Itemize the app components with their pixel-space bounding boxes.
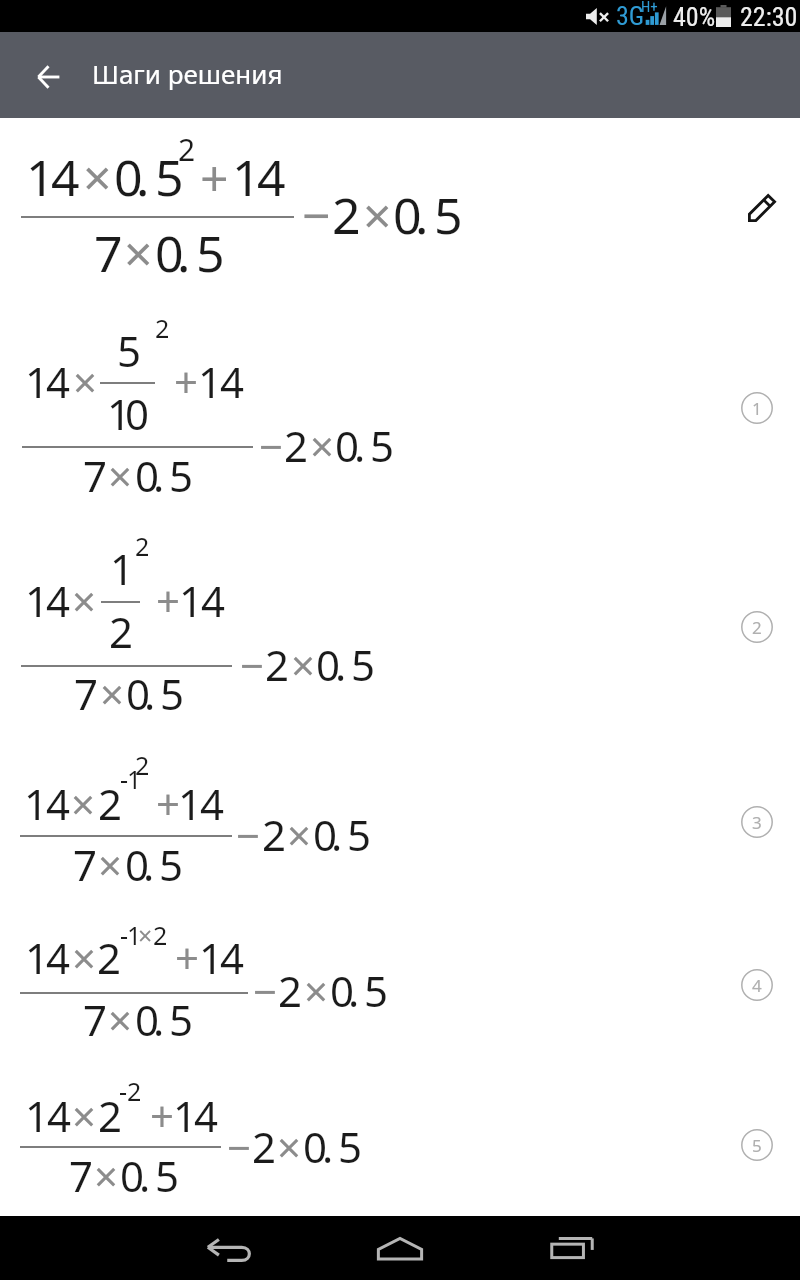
staticText: .	[354, 417, 366, 474]
staticText: ×	[108, 447, 133, 504]
staticText: 0	[313, 806, 338, 863]
staticText: H+	[641, 0, 658, 16]
button[interactable]: Navigate up	[0, 32, 96, 118]
staticText: 1	[178, 775, 203, 832]
staticText: 1	[110, 540, 135, 597]
button[interactable]: Home	[377, 1226, 423, 1272]
staticText: 5	[434, 181, 463, 249]
staticText: 7	[94, 219, 123, 287]
button[interactable]: Recent apps	[549, 1225, 595, 1271]
staticText: 4	[194, 1087, 219, 1144]
staticText: ×	[73, 353, 98, 410]
staticText: 5	[351, 636, 376, 693]
staticText: 2	[127, 1074, 142, 1108]
staticText: 1	[25, 929, 50, 986]
staticText: ×	[72, 929, 97, 986]
staticText: 7	[74, 665, 99, 722]
staticText: −	[240, 636, 265, 693]
staticText: 4	[220, 929, 245, 986]
staticText: 5	[155, 1147, 180, 1204]
staticText: +	[156, 775, 181, 832]
staticText: 5	[169, 991, 194, 1048]
staticText: 5	[155, 143, 184, 211]
staticText: 1	[199, 929, 224, 986]
staticText: 5	[347, 806, 372, 863]
staticText: 2	[98, 775, 123, 832]
staticText: 0	[393, 181, 422, 249]
button[interactable]: Back	[196, 1227, 262, 1273]
staticText: 0	[120, 1147, 145, 1204]
staticText: 1	[179, 572, 204, 629]
staticText: 1	[232, 143, 261, 211]
staticText: 5	[160, 665, 185, 722]
staticText: 1	[107, 385, 132, 442]
staticText: -	[120, 918, 129, 952]
staticText: ×	[138, 918, 153, 952]
staticText: 0	[114, 143, 143, 211]
staticText: 5	[364, 962, 389, 1019]
staticText: 2	[98, 1087, 123, 1144]
staticText: 0	[125, 836, 150, 893]
staticText: .	[153, 991, 165, 1048]
staticText: 4	[46, 775, 71, 832]
staticText: 2	[278, 962, 303, 1019]
staticText: 40%	[673, 2, 716, 32]
staticText: ×	[72, 1087, 97, 1144]
staticText: 1	[26, 143, 55, 211]
staticText: 1	[25, 353, 50, 410]
button[interactable]: Step 2	[733, 603, 781, 651]
staticText: ×	[94, 1147, 119, 1204]
staticText: 5	[370, 417, 395, 474]
staticText: 4	[46, 929, 71, 986]
button[interactable]: Step 5	[733, 1121, 781, 1169]
staticText: 2	[97, 929, 122, 986]
staticText: 2	[135, 748, 150, 782]
staticText: ×	[304, 962, 329, 1019]
staticText: 7	[69, 1147, 94, 1204]
staticText: ×	[124, 219, 153, 287]
staticText: 2	[752, 616, 762, 639]
staticText: 2	[262, 806, 287, 863]
staticText: 7	[73, 836, 98, 893]
button[interactable]: Step 1	[733, 384, 781, 432]
staticText: −	[253, 962, 278, 1019]
staticText: .	[153, 447, 165, 504]
staticText: +	[174, 353, 199, 410]
staticText: +	[150, 1087, 175, 1144]
staticText: 0	[125, 385, 150, 442]
staticText: 4	[201, 572, 226, 629]
staticText: 5	[117, 322, 142, 379]
staticText: .	[348, 962, 360, 1019]
staticText: 0	[135, 447, 160, 504]
staticText: 4	[51, 143, 80, 211]
staticText: 1	[25, 572, 50, 629]
staticText: -	[119, 1074, 128, 1108]
staticText: 5	[338, 1118, 363, 1175]
button[interactable]: Step 4	[733, 961, 781, 1009]
staticText: 1	[127, 918, 142, 952]
staticText: 2	[153, 918, 168, 952]
button[interactable]: Edit expression	[738, 184, 786, 232]
staticText: +	[175, 929, 200, 986]
staticText: 22:30	[740, 2, 798, 32]
staticText: 0	[335, 417, 360, 474]
button[interactable]: Step 3	[733, 798, 781, 846]
staticText: .	[144, 665, 156, 722]
staticText: .	[177, 219, 191, 287]
staticText: 0	[135, 991, 160, 1048]
staticText: 1	[752, 397, 762, 420]
staticText: ×	[287, 806, 312, 863]
staticText: ×	[277, 1118, 302, 1175]
staticText: ×	[83, 143, 112, 211]
staticText: 4	[46, 353, 71, 410]
staticText: 4	[257, 143, 286, 211]
staticText: 5	[752, 1134, 762, 1157]
staticText: 1	[24, 775, 49, 832]
staticText: ×	[363, 181, 392, 249]
staticText: 1	[25, 1087, 50, 1144]
staticText: ×	[98, 836, 123, 893]
staticText: +	[200, 143, 229, 211]
staticText: 2	[284, 417, 309, 474]
staticText: 5	[159, 836, 184, 893]
staticText: 3	[752, 811, 762, 834]
